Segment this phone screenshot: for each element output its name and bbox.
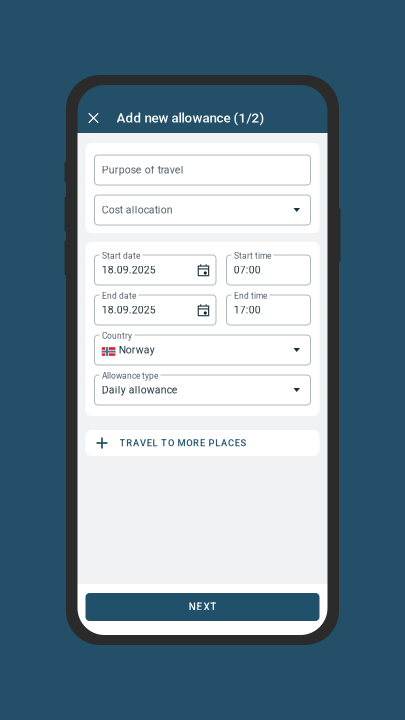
staticText: Norway xyxy=(119,344,155,356)
staticText: Start time xyxy=(234,251,271,261)
staticText: 17:00 xyxy=(234,304,261,316)
staticText: Add new allowance (1/2) xyxy=(116,110,264,126)
staticText: Start date xyxy=(102,251,140,261)
staticText: End date xyxy=(102,291,136,301)
staticText: 18.09.2025 xyxy=(102,304,156,316)
staticText: Daily allowance xyxy=(102,384,178,396)
button[interactable]: NEXT xyxy=(77,593,327,621)
button[interactable]: Close xyxy=(80,105,106,131)
staticText: TRAVEL TO MORE PLACES xyxy=(119,437,246,448)
button[interactable]: 18.09.2025 xyxy=(94,255,216,285)
button[interactable]: Norway xyxy=(94,335,310,365)
button[interactable]: Daily allowance xyxy=(94,375,310,405)
staticText: End time xyxy=(234,291,267,301)
button[interactable]: 18.09.2025 xyxy=(94,295,216,325)
button[interactable]: Purpose of travel xyxy=(94,155,310,185)
button[interactable]: 07:00 xyxy=(226,255,310,285)
staticText: Purpose of travel xyxy=(102,164,184,176)
button[interactable]: 17:00 xyxy=(226,295,310,325)
staticText: Cost allocation xyxy=(102,204,173,216)
staticText: 18.09.2025 xyxy=(102,264,156,276)
staticText: Country xyxy=(102,331,132,341)
staticText: NEXT xyxy=(189,601,216,613)
staticText: 07:00 xyxy=(234,264,261,276)
button[interactable]: TRAVEL TO MORE PLACES xyxy=(77,430,327,456)
staticText: Allowance type xyxy=(102,371,158,381)
button[interactable]: Cost allocation xyxy=(94,195,310,225)
